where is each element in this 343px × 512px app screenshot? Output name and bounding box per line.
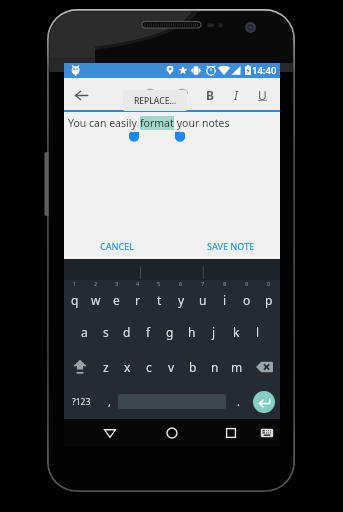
button[interactable]: 1 (64, 280, 85, 314)
staticText: U (258, 87, 267, 103)
button[interactable]: I (223, 78, 249, 112)
button[interactable]: 8 (214, 280, 236, 314)
staticText: d (123, 324, 131, 340)
button[interactable]: s (95, 314, 116, 349)
staticText: t (157, 292, 162, 308)
button[interactable]: CANCEL (94, 235, 141, 257)
button[interactable]: U (249, 78, 275, 112)
staticText: 1 (73, 280, 77, 287)
staticText: 9 (245, 280, 249, 287)
button[interactable]: f (137, 314, 159, 349)
staticText: k (233, 324, 240, 340)
staticText: y (178, 292, 185, 308)
button[interactable]: Redo (171, 78, 193, 112)
staticText: m (231, 359, 243, 375)
staticText: c (146, 359, 152, 375)
button[interactable]: Back (64, 78, 98, 112)
staticText: u (199, 292, 207, 308)
staticText: b (189, 359, 197, 375)
staticText: CANCEL (100, 240, 135, 252)
staticText: SAVE NOTE (207, 240, 255, 252)
staticText: h (188, 324, 196, 340)
staticText: o (243, 292, 251, 308)
staticText: s (103, 324, 109, 340)
staticText: 7 (201, 280, 205, 287)
staticText: f (146, 324, 151, 340)
staticText: 6 (179, 280, 183, 287)
staticText: B (206, 87, 214, 103)
button[interactable]: B (197, 78, 223, 112)
staticText: 2 (94, 280, 98, 287)
button[interactable]: b (182, 349, 204, 384)
staticText: q (71, 292, 79, 308)
staticText: ?123 (72, 396, 91, 408)
staticText: w (91, 292, 101, 308)
staticText: n (211, 359, 219, 375)
button[interactable]: z (95, 349, 116, 384)
button[interactable]: h (181, 314, 203, 349)
button[interactable]: j (203, 314, 225, 349)
button[interactable]: Undo (139, 78, 161, 112)
button[interactable]: 6 (170, 280, 192, 314)
button[interactable]: 0 (258, 280, 280, 314)
staticText: e (113, 292, 120, 308)
button[interactable]: Recents (218, 419, 244, 447)
button[interactable]: Enter (248, 384, 280, 419)
button[interactable]: v (160, 349, 182, 384)
staticText: 0 (267, 280, 271, 287)
button[interactable]: , (98, 384, 120, 419)
staticText: 3 (115, 280, 119, 287)
staticText: your notes (174, 116, 230, 130)
button[interactable]: k (225, 314, 247, 349)
button[interactable]: x (116, 349, 138, 384)
staticText: You can easily (68, 116, 140, 130)
staticText: . (237, 394, 240, 409)
staticText: 14:40 (252, 64, 277, 77)
staticText: 4 (136, 280, 140, 287)
button[interactable]: 4 (127, 280, 148, 314)
button[interactable]: Shift (64, 349, 95, 384)
button[interactable]: a (74, 314, 95, 349)
button[interactable]: Space (112, 384, 232, 419)
button[interactable]: SAVE NOTE (201, 235, 261, 257)
button[interactable]: Keyboard (254, 419, 280, 447)
button[interactable]: . (228, 384, 248, 419)
button[interactable]: 7 (192, 280, 214, 314)
staticText: , (108, 394, 111, 409)
button[interactable]: l (247, 314, 269, 349)
staticText: g (166, 324, 174, 340)
staticText: l (256, 324, 260, 340)
staticText: i (223, 292, 227, 308)
staticText: a (81, 324, 88, 340)
button[interactable]: 9 (236, 280, 258, 314)
button[interactable]: 5 (148, 280, 170, 314)
staticText: I (234, 87, 238, 103)
staticText: j (212, 324, 216, 340)
button[interactable]: ?123 (64, 384, 98, 419)
staticText: z (103, 359, 109, 375)
staticText: REPLACE… (134, 95, 177, 107)
button[interactable]: n (204, 349, 226, 384)
staticText: p (265, 292, 273, 308)
button[interactable]: c (138, 349, 160, 384)
button[interactable]: d (116, 314, 137, 349)
staticText: v (168, 359, 175, 375)
staticText: 5 (157, 280, 161, 287)
button[interactable]: g (159, 314, 181, 349)
button[interactable]: Backspace (248, 349, 280, 384)
button[interactable]: 2 (85, 280, 106, 314)
button[interactable]: 3 (106, 280, 127, 314)
staticText: format (140, 116, 174, 130)
button[interactable]: REPLACE… (123, 90, 187, 111)
button[interactable]: Back (97, 419, 123, 447)
staticText: 8 (223, 280, 227, 287)
staticText: x (124, 359, 131, 375)
staticText: r (135, 292, 140, 308)
button[interactable]: Home (159, 419, 185, 447)
button[interactable]: m (226, 349, 248, 384)
